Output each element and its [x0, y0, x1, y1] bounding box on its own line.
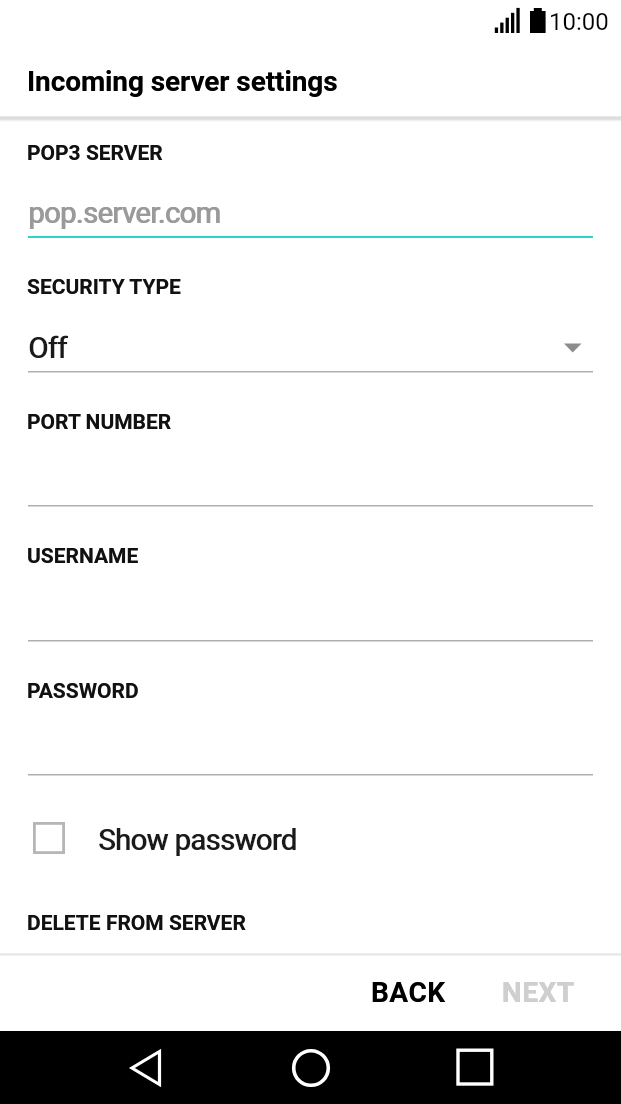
staticText: NEXT [502, 976, 575, 1009]
staticText: DELETE FROM SERVER [27, 911, 246, 936]
staticText: PASSWORD [27, 679, 139, 704]
staticText: POP3 SERVER [27, 141, 163, 166]
staticText: PORT NUMBER [27, 410, 172, 435]
button[interactable]: POP3 server [28, 180, 593, 238]
button[interactable]: Off [28, 326, 593, 370]
button[interactable]: BACK [356, 954, 461, 1030]
staticText: SECURITY TYPE [27, 275, 181, 300]
staticText: Incoming server settings [27, 65, 338, 98]
staticText: PORT NUMBER [27, 410, 172, 435]
staticText: pop.server.com [29, 196, 222, 230]
staticText: Off [28, 331, 67, 365]
staticText: BACK [371, 976, 446, 1009]
staticText: POP3 SERVER [27, 141, 163, 166]
staticText: BACK [371, 976, 446, 1009]
staticText: DELETE FROM SERVER [27, 911, 246, 936]
staticText: Off [29, 331, 68, 365]
button[interactable]: Back [112, 1034, 180, 1102]
button[interactable]: NEXT [486, 954, 591, 1030]
button[interactable]: Show password [28, 813, 328, 869]
staticText: SECURITY TYPE [27, 275, 181, 300]
staticText: PASSWORD [27, 679, 139, 704]
button[interactable]: Recent apps [441, 1034, 509, 1102]
staticText: NEXT [502, 976, 575, 1009]
staticText: USERNAME [27, 544, 139, 569]
button[interactable]: Home [277, 1034, 345, 1102]
staticText: USERNAME [27, 544, 139, 569]
staticText: 10:00 [549, 8, 609, 36]
staticText: pop.server.com [28, 196, 221, 230]
staticText: Incoming server settings [27, 65, 338, 98]
staticText: Show password [99, 823, 298, 857]
staticText: Show password [98, 823, 297, 857]
